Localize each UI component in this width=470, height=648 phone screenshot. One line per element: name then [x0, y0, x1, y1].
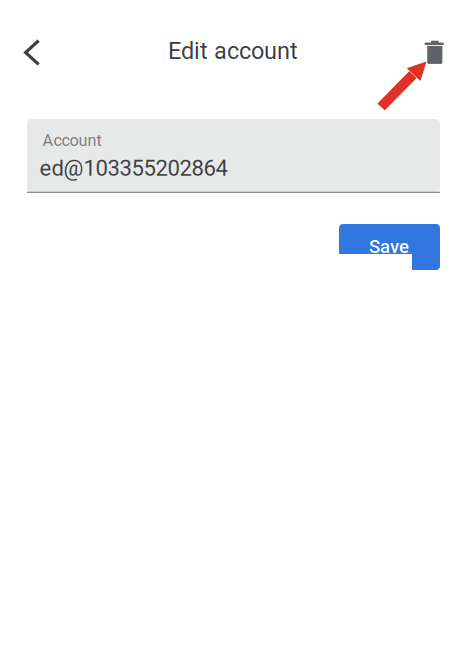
button[interactable]: Save [339, 224, 440, 270]
button[interactable]: Delete account [411, 29, 459, 77]
button[interactable]: Back [8, 28, 56, 76]
button[interactable]: Account [27, 119, 440, 193]
staticText: Account [43, 131, 102, 150]
staticText: Edit account [168, 37, 298, 65]
staticText: Save [369, 236, 409, 257]
staticText: ed@103355202864 [39, 155, 227, 181]
